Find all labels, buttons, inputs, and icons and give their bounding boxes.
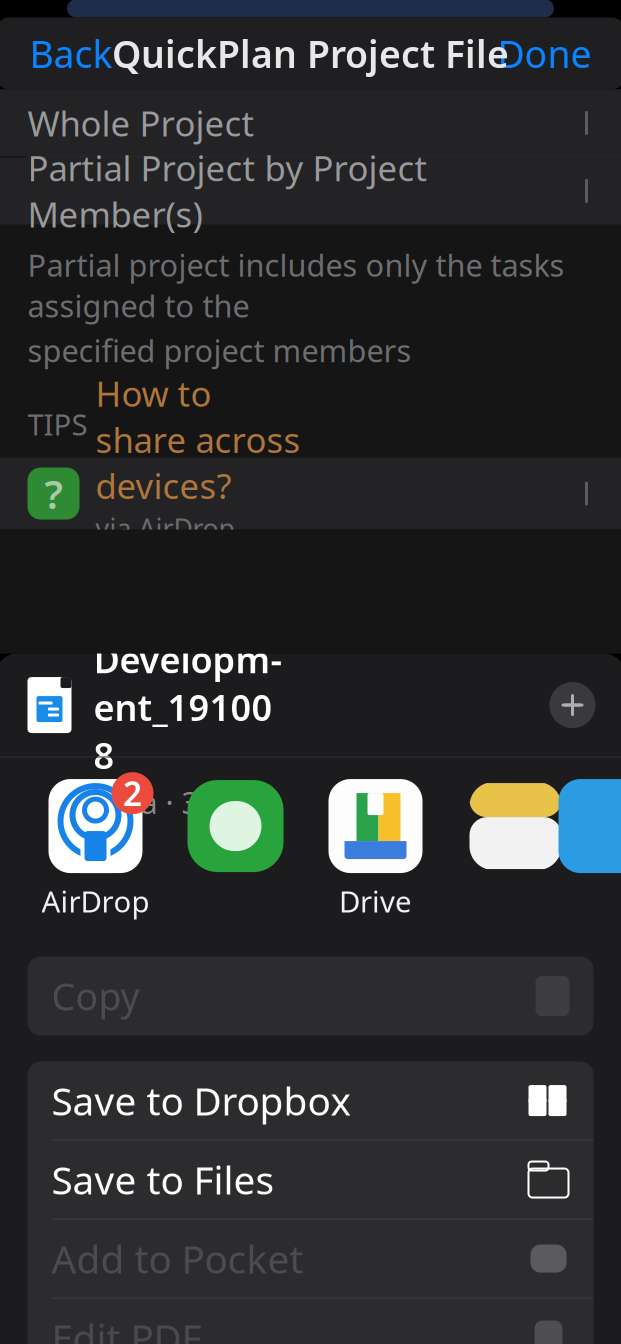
button[interactable]: Back	[15, 19, 126, 88]
button[interactable]: AirDrop	[25, 776, 165, 914]
staticText: ?	[44, 467, 62, 520]
button[interactable]: Save to Files	[27, 1141, 593, 1219]
button[interactable]: Share destination	[165, 776, 305, 914]
staticText: Whole Project	[27, 100, 254, 146]
button[interactable]: Whole Project	[0, 89, 621, 156]
button[interactable]: Drive	[305, 776, 445, 914]
staticText: data · 32 KB	[93, 782, 264, 822]
staticText: 2	[123, 771, 142, 815]
staticText: Back	[29, 29, 112, 78]
staticText: Partial Project by Project Member(s)	[27, 145, 427, 237]
button[interactable]: Save to Dropbox	[27, 1062, 593, 1140]
staticText: QuickPlan Project File	[112, 29, 509, 78]
staticText: Partial project includes only the tasks …	[27, 244, 564, 326]
staticText: specified project members	[27, 330, 411, 371]
button[interactable]: Done	[483, 19, 605, 88]
staticText: Edit PDF	[51, 1312, 201, 1344]
staticText: Save to Files	[51, 1154, 274, 1205]
staticText: Drive	[339, 882, 412, 921]
staticText: AirDrop	[41, 882, 149, 921]
button[interactable]: ?	[0, 458, 621, 530]
staticText: Save to Dropbox	[51, 1075, 350, 1126]
button[interactable]: Share destination	[445, 776, 585, 914]
button[interactable]: Close	[549, 682, 595, 728]
staticText: How to share across devices?	[95, 370, 300, 508]
button[interactable]: Copy	[27, 957, 593, 1036]
staticText: Copy	[51, 971, 139, 1021]
button[interactable]: More share destinations	[585, 779, 621, 911]
button[interactable]: Add to Pocket	[27, 1220, 593, 1298]
staticText: via AirDrop, Email, Dropbox, and ...	[95, 510, 292, 617]
button[interactable]: Partial Project by Project Member(s)	[0, 157, 621, 224]
staticText: TIPS	[27, 405, 87, 444]
staticText: Done	[497, 29, 591, 78]
button[interactable]: Edit PDF	[27, 1299, 593, 1344]
staticText: Add to Pocket	[51, 1233, 303, 1284]
staticText: Software_Development_191008	[93, 588, 282, 779]
